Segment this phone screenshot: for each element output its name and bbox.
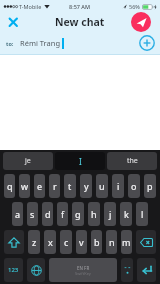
staticText: k	[124, 208, 129, 220]
button[interactable]	[121, 258, 133, 282]
staticText: o	[131, 180, 137, 192]
button[interactable]: w	[19, 174, 30, 198]
button[interactable]: v	[76, 230, 87, 254]
staticText: e	[37, 180, 43, 192]
staticText: je	[25, 156, 31, 166]
button[interactable]: m	[121, 230, 132, 254]
button[interactable]: the	[107, 152, 157, 170]
staticText: u	[99, 180, 105, 192]
button[interactable]: b	[91, 230, 102, 254]
staticText: I	[79, 156, 82, 167]
staticText: EN FR	[77, 265, 90, 271]
staticText: s	[30, 208, 35, 220]
button[interactable]: t	[64, 174, 76, 198]
staticText: v	[79, 236, 84, 248]
staticText: SwiftKey	[75, 271, 91, 276]
staticText: z	[32, 236, 37, 248]
staticText: g	[75, 208, 81, 220]
staticText: d	[45, 208, 51, 220]
button[interactable]: EN FR	[49, 258, 117, 282]
staticText: a	[15, 208, 21, 220]
button[interactable]: d	[42, 202, 53, 226]
button[interactable]: o	[128, 174, 140, 198]
button[interactable]: k	[120, 202, 132, 226]
button[interactable]: y	[80, 174, 92, 198]
staticText: c	[64, 236, 69, 248]
staticText: Rémi Trang	[20, 38, 60, 48]
staticText: p	[147, 180, 153, 192]
button[interactable]	[4, 230, 24, 254]
staticText: n	[109, 236, 115, 248]
staticText: q	[7, 180, 13, 192]
staticText: r	[53, 180, 57, 192]
button[interactable]: q	[4, 174, 15, 198]
staticText: j	[109, 208, 112, 220]
staticText: 56%	[129, 3, 140, 10]
button[interactable]: c	[60, 230, 72, 254]
button[interactable]: l	[136, 202, 148, 226]
staticText: x	[48, 236, 53, 248]
button[interactable]: z	[28, 230, 40, 254]
button[interactable]: h	[88, 202, 100, 226]
staticText: the	[127, 156, 138, 166]
button[interactable]	[131, 12, 151, 32]
staticText: New chat	[55, 15, 105, 29]
button[interactable]: to:	[6, 32, 155, 54]
button[interactable]	[139, 35, 155, 51]
button[interactable]: s	[27, 202, 38, 226]
button[interactable]: I	[55, 152, 105, 170]
button[interactable]: j	[104, 202, 116, 226]
button[interactable]: a	[12, 202, 23, 226]
button[interactable]: u	[96, 174, 108, 198]
staticText: i	[117, 180, 120, 192]
button[interactable]: g	[72, 202, 84, 226]
button[interactable]	[6, 15, 20, 29]
button[interactable]: r	[49, 174, 60, 198]
staticText: t	[68, 180, 72, 192]
button[interactable]: n	[106, 230, 117, 254]
staticText: 123	[8, 266, 19, 274]
staticText: f	[61, 208, 65, 220]
staticText: m	[122, 236, 131, 248]
staticText: l	[141, 208, 144, 220]
staticText: h	[91, 208, 97, 220]
staticText: w	[21, 180, 29, 192]
button[interactable]: e	[34, 174, 45, 198]
staticText: to:	[6, 40, 14, 47]
button[interactable]	[137, 258, 156, 282]
staticText: y	[84, 180, 89, 192]
staticText: 8:57 AM	[69, 3, 91, 10]
button[interactable]: f	[57, 202, 68, 226]
button[interactable]: 123	[4, 258, 23, 282]
staticText: b	[94, 236, 100, 248]
button[interactable]	[27, 258, 45, 282]
button[interactable]: je	[3, 152, 53, 170]
button[interactable]: i	[112, 174, 124, 198]
staticText: T-Mobile	[19, 3, 42, 10]
button[interactable]: p	[144, 174, 156, 198]
button[interactable]: x	[44, 230, 56, 254]
button[interactable]	[136, 230, 156, 254]
